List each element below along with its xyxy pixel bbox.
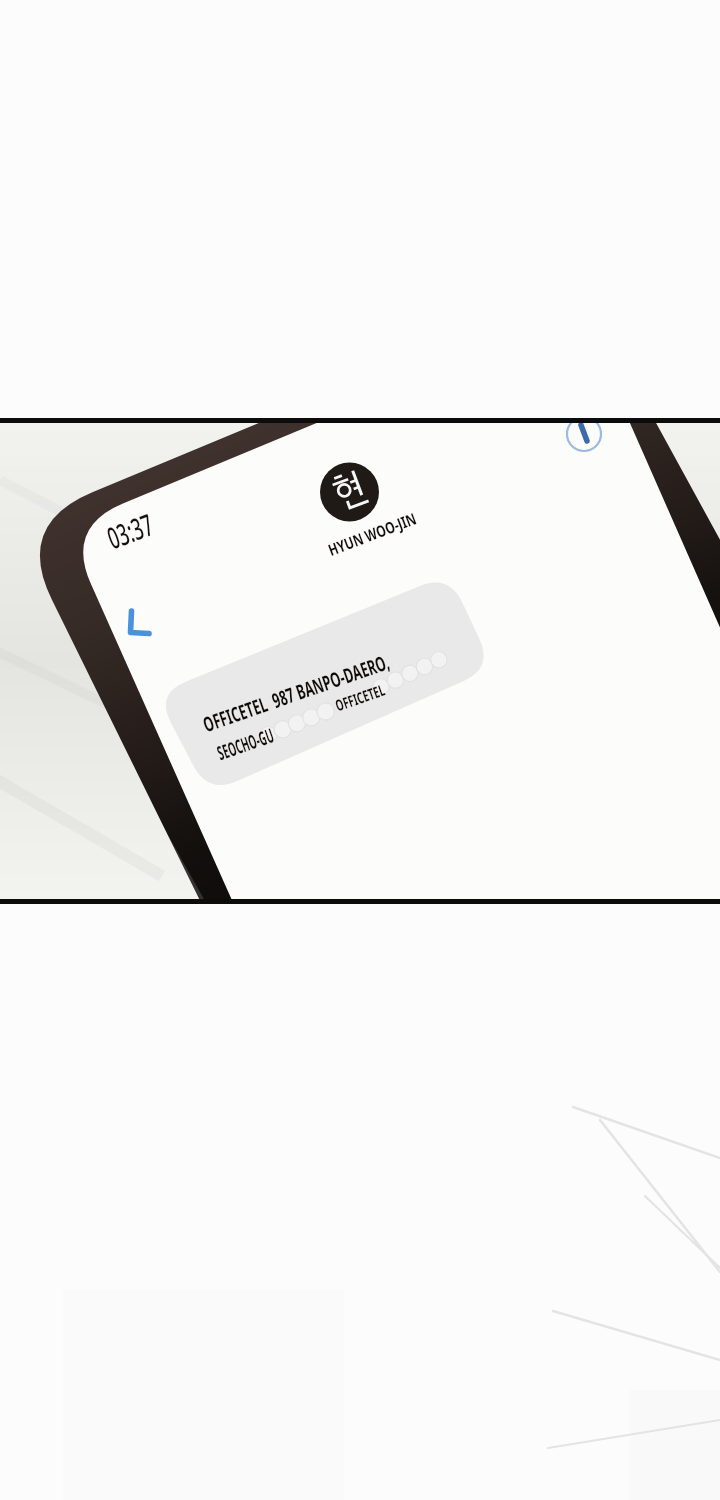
button[interactable] (0, 0, 720, 1500)
